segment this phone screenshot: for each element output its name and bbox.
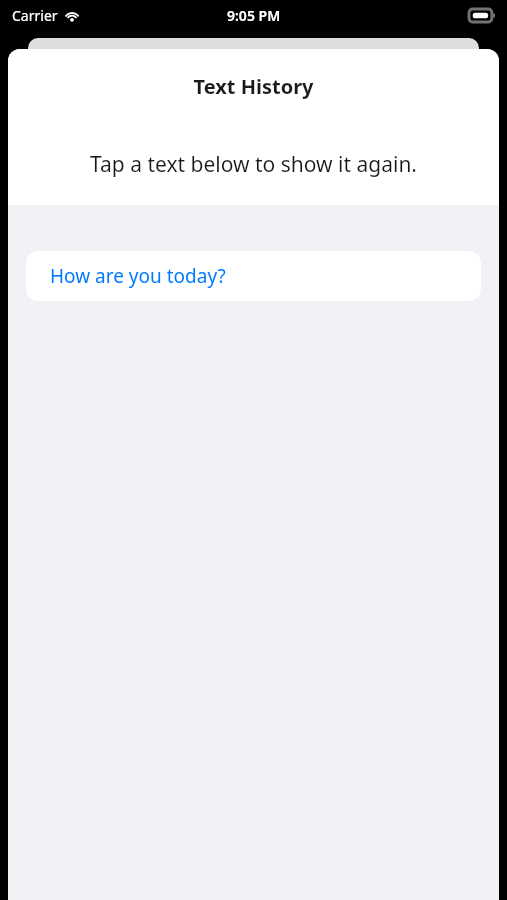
staticText: 9:05 PM	[227, 6, 281, 25]
staticText: How are you today?	[50, 263, 226, 289]
staticText: Tap a text below to show it again.	[8, 150, 499, 179]
staticText: Text History	[8, 73, 499, 100]
staticText: Carrier	[12, 6, 58, 25]
button[interactable]: How are you today?	[26, 251, 481, 301]
